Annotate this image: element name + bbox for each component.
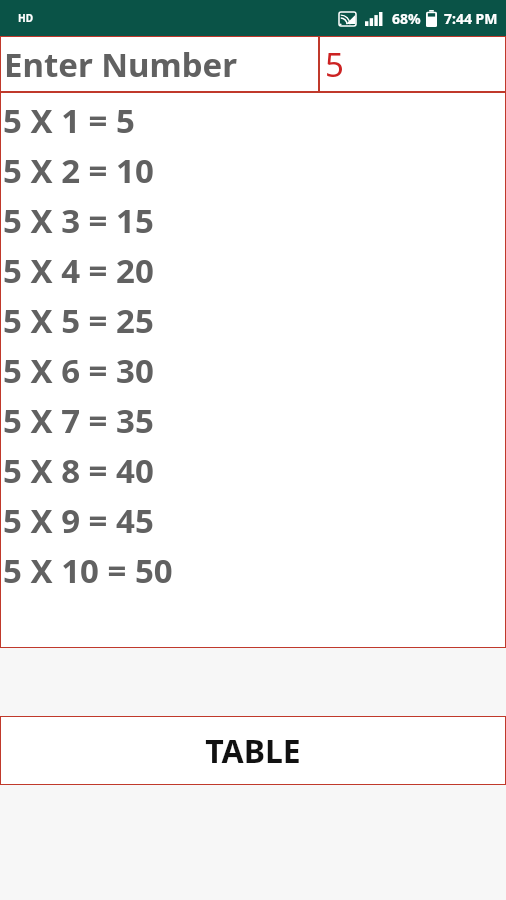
staticText: 5 X 7 = 35: [3, 398, 154, 443]
button[interactable]: Enter Number: [0, 36, 319, 92]
staticText: HD: [18, 11, 33, 25]
staticText: 5 X 10 = 50: [3, 548, 173, 593]
staticText: 5: [325, 42, 344, 87]
staticText: 5 X 4 = 20: [3, 248, 154, 293]
staticText: 7:44 PM: [444, 9, 498, 28]
staticText: 5 X 1 = 5: [3, 98, 135, 143]
button[interactable]: 5: [319, 36, 506, 92]
staticText: 5 X 3 = 15: [3, 198, 154, 243]
staticText: 5 X 8 = 40: [3, 448, 154, 493]
staticText: 5 X 9 = 45: [3, 498, 154, 543]
staticText: 5 X 2 = 10: [3, 148, 154, 193]
button[interactable]: TABLE: [0, 716, 506, 785]
staticText: 68%: [392, 9, 421, 28]
staticText: 5 X 5 = 25: [3, 298, 154, 343]
staticText: TABLE: [205, 729, 301, 773]
staticText: 5 X 6 = 30: [3, 348, 154, 393]
staticText: Enter Number: [4, 42, 238, 87]
